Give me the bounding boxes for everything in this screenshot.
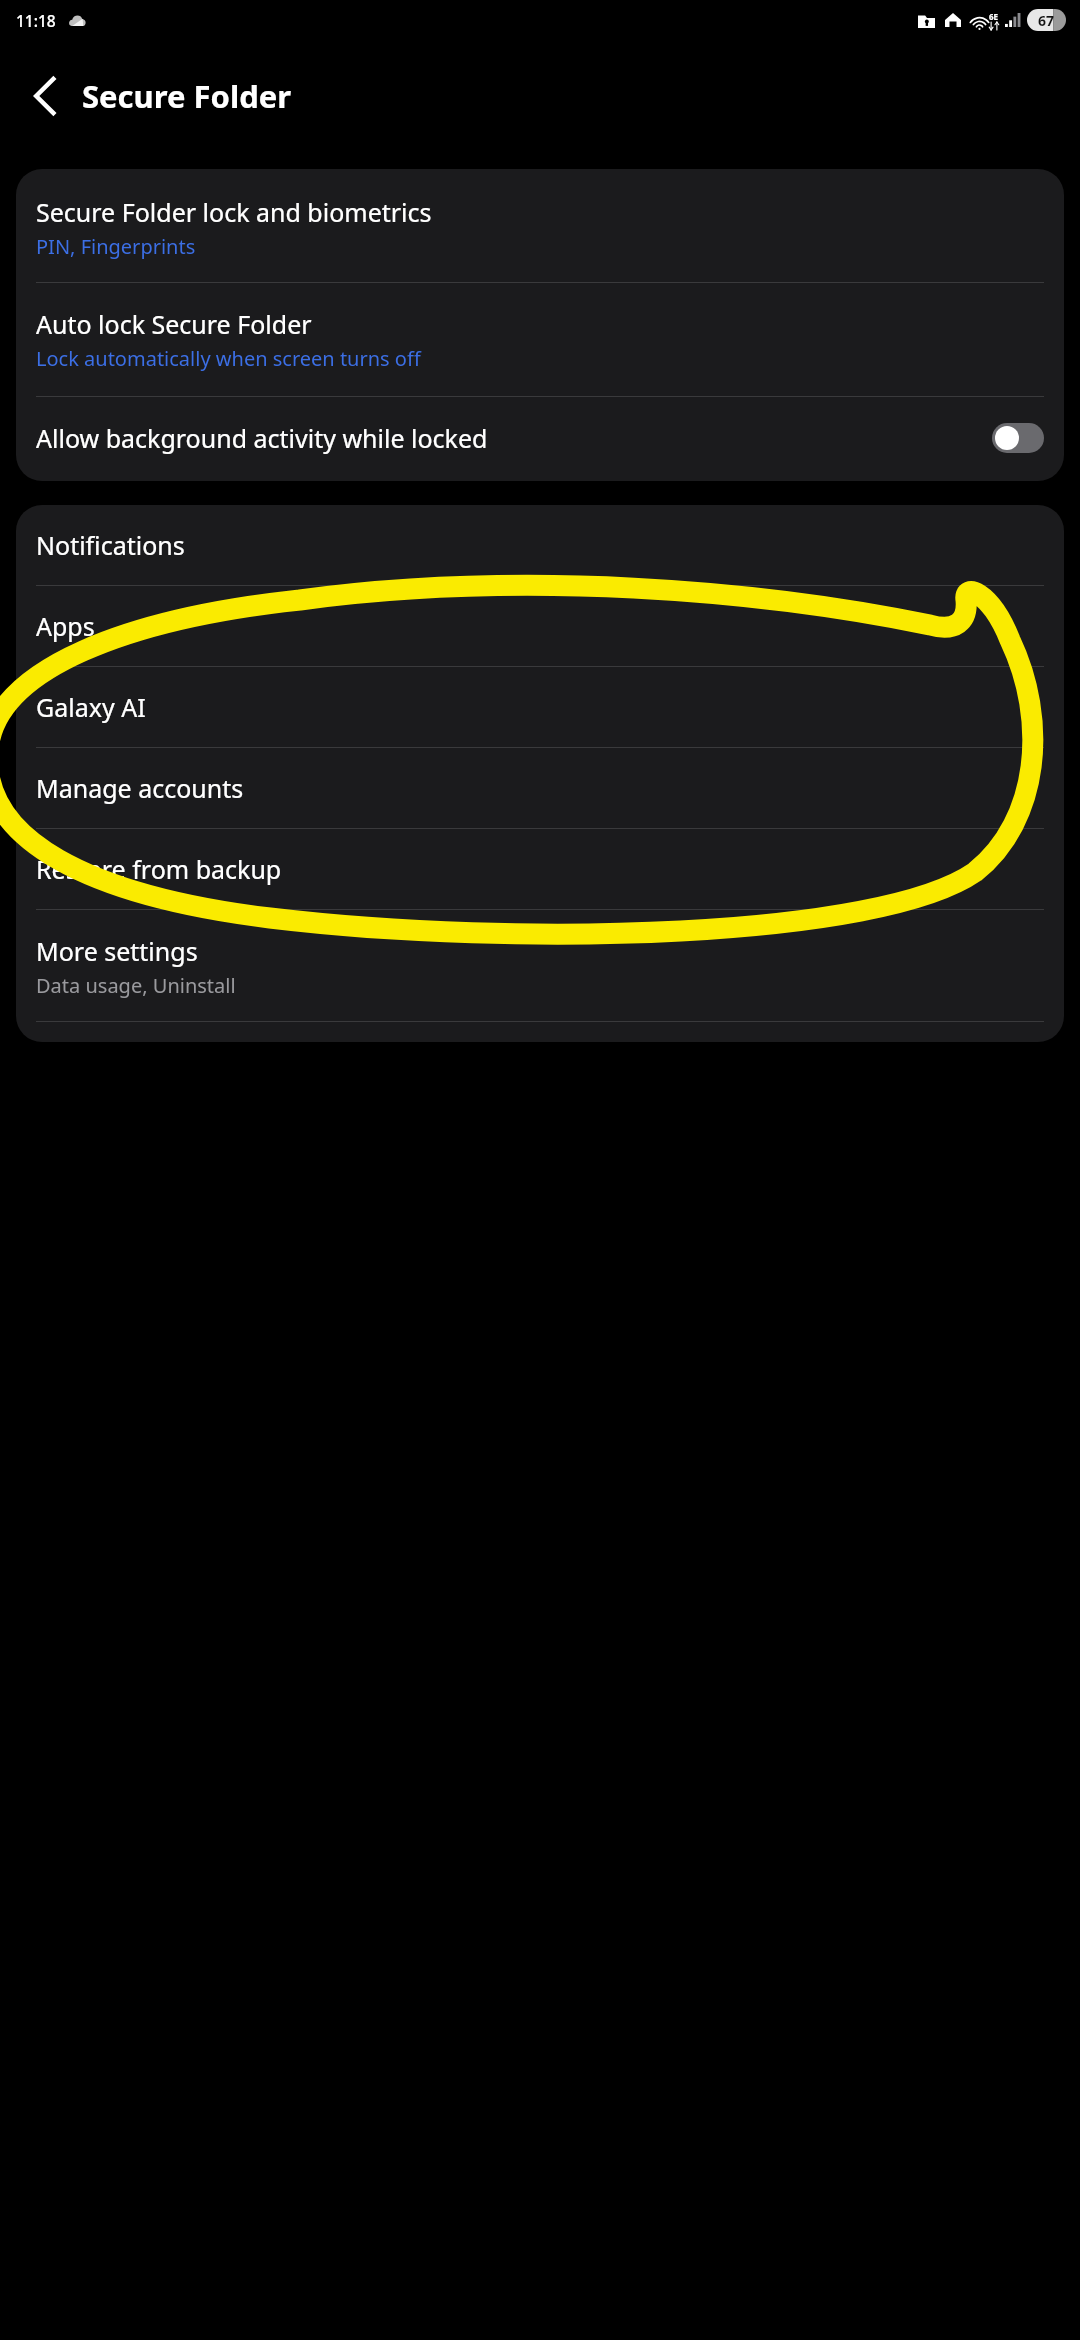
staticText: 11:18 — [16, 10, 56, 31]
button[interactable]: Secure Folder lock and biometrics — [16, 169, 1064, 282]
staticText: Data usage, Uninstall — [36, 972, 236, 999]
button[interactable]: Allow background activity while locked — [16, 397, 1064, 481]
button[interactable]: Notifications — [16, 505, 1064, 585]
button[interactable]: Galaxy AI — [16, 667, 1064, 747]
staticText: Manage accounts — [36, 771, 244, 805]
button[interactable]: More settings — [16, 910, 1064, 1021]
staticText: Auto lock Secure Folder — [36, 307, 312, 341]
staticText: Allow background activity while locked — [36, 421, 976, 455]
staticText: Restore from backup — [36, 852, 282, 886]
staticText: Secure Folder lock and biometrics — [36, 195, 432, 229]
staticText: 6E — [989, 11, 999, 22]
staticText: Notifications — [36, 528, 185, 562]
button[interactable]: Allow background activity while locked — [992, 423, 1044, 453]
button[interactable]: Auto lock Secure Folder — [16, 283, 1064, 396]
staticText: Galaxy AI — [36, 690, 146, 724]
staticText: Secure Folder — [82, 75, 292, 117]
staticText: PIN, Fingerprints — [36, 233, 196, 260]
button[interactable]: Restore from backup — [16, 829, 1064, 909]
button[interactable]: Manage accounts — [16, 748, 1064, 828]
button[interactable]: Apps — [16, 586, 1064, 666]
button[interactable]: Navigate up — [14, 65, 76, 127]
staticText: Apps — [36, 609, 95, 643]
staticText: More settings — [36, 934, 198, 968]
staticText: 67 — [1038, 11, 1055, 30]
staticText: Lock automatically when screen turns off — [36, 345, 421, 372]
